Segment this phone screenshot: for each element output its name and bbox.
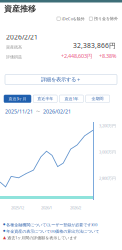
staticText: 資産推移 bbox=[4, 4, 36, 14]
staticText: 直近3ヶ月 bbox=[8, 96, 26, 101]
staticText: 2026/2/21 bbox=[6, 32, 38, 41]
staticText: 3,000万円 bbox=[99, 149, 116, 155]
button[interactable]: 詳細を表示する＋ bbox=[5, 74, 117, 84]
button[interactable]: 直近1年 bbox=[59, 95, 83, 102]
staticText: iDeCoを除外 bbox=[62, 16, 85, 21]
button[interactable]: 預り金を除外 bbox=[89, 16, 118, 21]
staticText: 直近1年 bbox=[64, 96, 78, 101]
staticText: 直近半年 bbox=[37, 96, 53, 101]
button[interactable]: ● bbox=[3, 222, 97, 227]
staticText: 2,800万円 bbox=[99, 176, 116, 181]
staticText: 資産残高 bbox=[6, 45, 22, 49]
staticText: 過去1ヶ月間の評価額を表示しています bbox=[7, 235, 77, 240]
staticText: 2026/2 bbox=[70, 205, 81, 210]
staticText: 〜 bbox=[36, 109, 40, 114]
staticText: 2026/02/21 bbox=[43, 108, 71, 115]
staticText: +8.38% bbox=[99, 52, 116, 60]
staticText: 2025/12 bbox=[11, 205, 24, 210]
staticText: ● bbox=[3, 229, 5, 232]
staticText: 全期間 bbox=[92, 96, 104, 101]
staticText: +2,448,603円 bbox=[61, 52, 92, 60]
staticText: 3,200万円 bbox=[99, 123, 116, 128]
staticText: 預り金を除外 bbox=[94, 16, 118, 21]
staticText: ▲ bbox=[3, 235, 6, 239]
button[interactable]: 全期間 bbox=[86, 95, 110, 102]
staticText: 年金資産の表示について(※)価格の算出方法について bbox=[6, 228, 99, 234]
button[interactable]: 直近半年 bbox=[33, 95, 57, 102]
staticText: 2026/1 bbox=[41, 205, 52, 210]
staticText: 2025/11/21 bbox=[5, 108, 33, 115]
button[interactable]: 直近3ヶ月 bbox=[4, 95, 31, 102]
staticText: 各種金融機関について(ユーザー登録が必要です)(※) bbox=[6, 222, 97, 227]
staticText: 評価損益 bbox=[6, 54, 22, 59]
staticText: ● bbox=[3, 223, 5, 226]
staticText: 32,383,866円 bbox=[73, 41, 116, 50]
button[interactable]: iDeCoを除外 bbox=[57, 16, 85, 21]
staticText: 詳細を表示する＋ bbox=[41, 76, 81, 83]
button[interactable]: ● bbox=[3, 228, 99, 234]
